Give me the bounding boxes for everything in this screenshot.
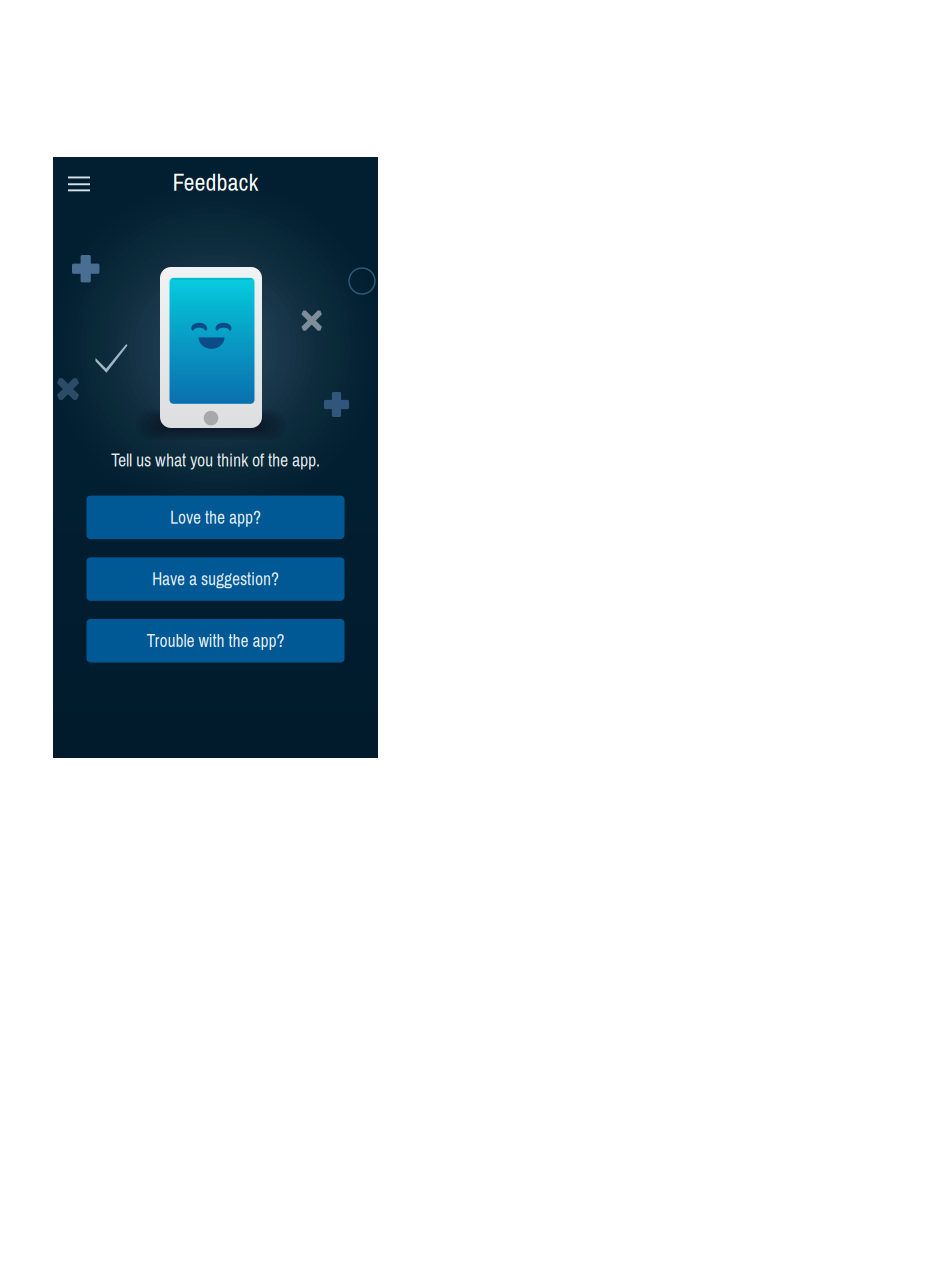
button[interactable]: Love the app? xyxy=(86,496,344,539)
button[interactable]: Trouble with the app? xyxy=(86,619,344,662)
staticText: Love the app? xyxy=(170,506,261,529)
staticText: Tell us what you think of the app. xyxy=(111,448,320,472)
staticText: Feedback xyxy=(172,166,258,198)
button[interactable]: Have a suggestion? xyxy=(86,557,344,601)
button[interactable]: Menu xyxy=(57,164,97,202)
staticText: Trouble with the app? xyxy=(146,629,284,652)
staticText: Have a suggestion? xyxy=(152,567,279,591)
